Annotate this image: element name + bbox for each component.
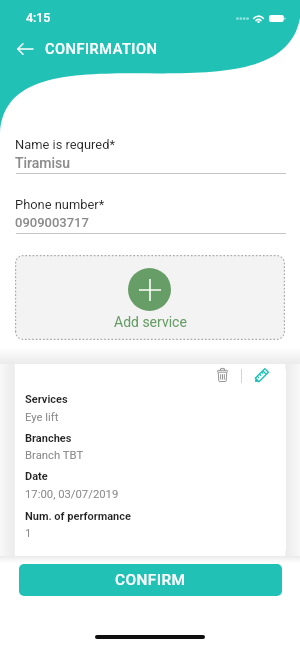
- button[interactable]: Add service: [15, 255, 285, 340]
- staticText: Add service: [114, 314, 187, 330]
- staticText: Branch TBT: [25, 449, 84, 462]
- staticText: Services: [25, 393, 68, 406]
- button[interactable]: Edit: [249, 364, 275, 388]
- button[interactable]: CONFIRM: [19, 564, 282, 596]
- staticText: 4:15: [26, 10, 51, 25]
- button[interactable]: Delete: [209, 364, 235, 388]
- staticText: Phone number*: [15, 197, 105, 212]
- staticText: 17:00, 03/07/2019: [25, 488, 119, 501]
- staticText: Eye lift: [25, 411, 59, 424]
- staticText: Tiramisu: [15, 155, 71, 171]
- staticText: Name is requred*: [15, 137, 115, 152]
- staticText: Date: [25, 470, 48, 483]
- staticText: CONFIRMATION: [45, 40, 158, 57]
- staticText: Branches: [25, 432, 72, 445]
- staticText: CONFIRM: [115, 571, 186, 589]
- staticText: Num. of performance: [25, 510, 131, 523]
- staticText: 0909003717: [15, 215, 89, 230]
- staticText: 1: [25, 527, 32, 540]
- button[interactable]: Back: [17, 43, 33, 55]
